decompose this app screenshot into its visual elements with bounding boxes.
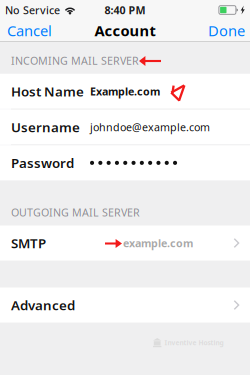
staticText: Host Name: [11, 82, 84, 100]
staticText: Advanced: [11, 296, 75, 314]
staticText: INCOMING MAIL SERVER: [11, 54, 139, 68]
staticText: Cancel: [7, 21, 52, 40]
staticText: SMTP: [11, 234, 46, 252]
staticText: Inventive Hosting: [164, 338, 223, 347]
staticText: Username: [11, 118, 80, 136]
staticText: Example.com: [90, 84, 160, 98]
staticText: 8:40 PM: [104, 3, 145, 17]
button[interactable]: Cancel: [0, 20, 60, 41]
staticText: example.com: [123, 236, 193, 250]
staticText: Done: [208, 21, 245, 40]
staticText: No Service: [5, 3, 60, 17]
staticText: johndoe@example.com: [90, 120, 210, 134]
button[interactable]: Done: [200, 20, 250, 41]
staticText: OUTGOING MAIL SERVER: [11, 205, 140, 220]
button[interactable]: Advanced: [0, 287, 250, 322]
staticText: Password: [11, 154, 74, 172]
staticText: Account: [94, 21, 155, 40]
button[interactable]: SMTP: [0, 225, 250, 260]
